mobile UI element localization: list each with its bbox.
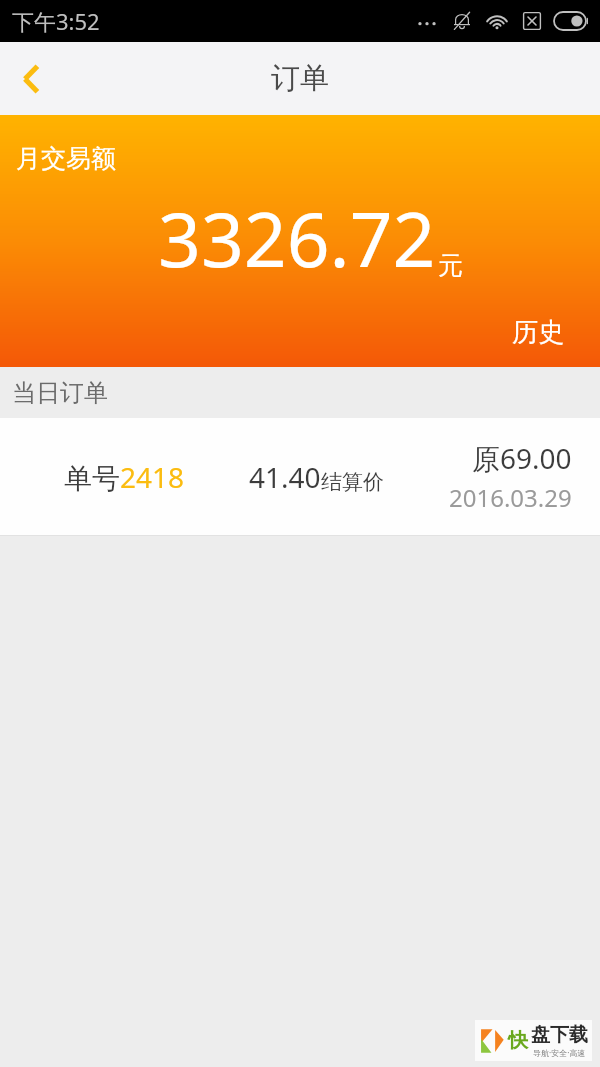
staticText: 月交易额 <box>16 143 116 174</box>
staticText: 当日订单 <box>12 378 108 408</box>
staticText: 2016.03.29 <box>449 481 572 514</box>
staticText: 历史 <box>512 316 564 349</box>
button[interactable]: 单号2418 <box>0 418 600 535</box>
staticText: 单号2418 <box>64 458 185 496</box>
staticText: 原69.00 <box>472 439 572 477</box>
staticText: 41.40 <box>249 458 321 496</box>
staticText: 快 <box>508 1028 528 1053</box>
staticText: 导航·安全·高速 <box>533 1047 586 1058</box>
staticText: 3326.72 <box>158 187 436 289</box>
staticText: 元 <box>438 250 463 281</box>
staticText: 订单 <box>271 60 329 97</box>
button[interactable]: 返回 <box>0 42 62 115</box>
staticText: 下午3:52 <box>12 6 100 36</box>
staticText: 结算价 <box>321 469 384 495</box>
button[interactable]: 历史 <box>506 312 570 353</box>
staticText: 盘下载 <box>531 1023 588 1047</box>
